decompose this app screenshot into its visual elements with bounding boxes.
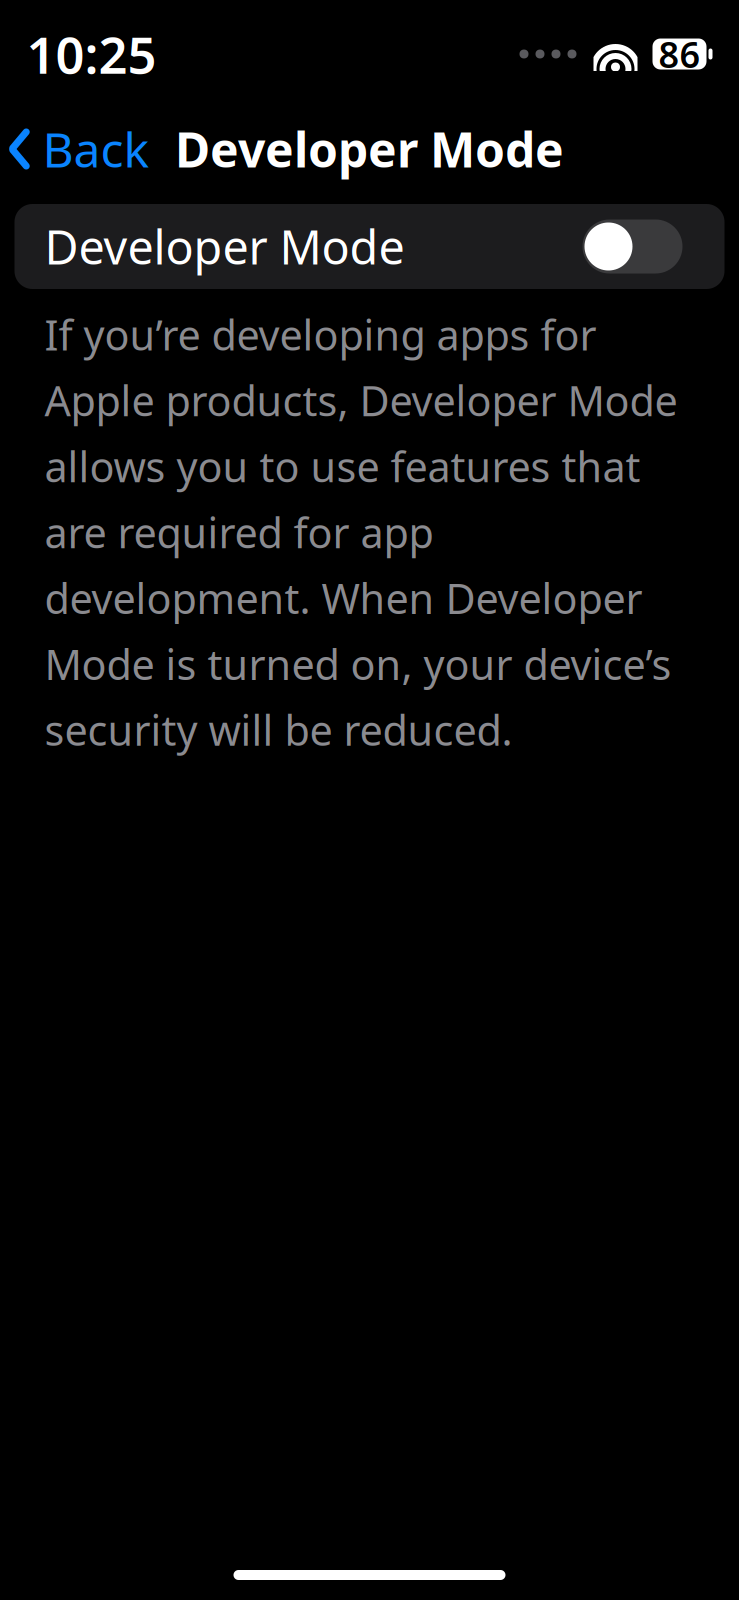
staticText: 86: [658, 30, 700, 78]
staticText: Developer Mode: [175, 117, 564, 181]
button[interactable]: Back: [1, 105, 155, 193]
button[interactable]: Developer Mode: [14, 204, 724, 289]
staticText: If you’re developing apps for Apple prod…: [44, 307, 677, 757]
staticText: 10:25: [26, 20, 156, 88]
staticText: Developer Mode: [44, 215, 404, 277]
staticText: Back: [42, 117, 149, 181]
